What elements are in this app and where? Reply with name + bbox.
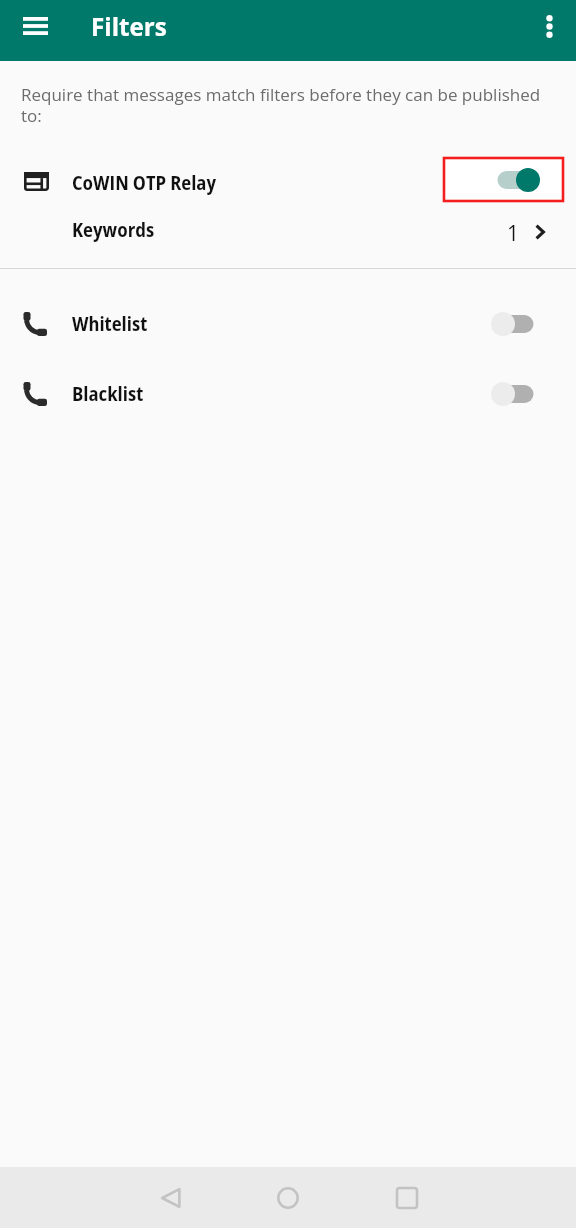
button[interactable]: Open navigation menu [5, 7, 66, 45]
staticText: Keywords [72, 217, 155, 243]
button[interactable]: Blacklist toggle [491, 382, 540, 406]
staticText: Blacklist [72, 381, 144, 407]
staticText: Filters [91, 10, 167, 43]
button[interactable]: Back [141, 1168, 201, 1228]
button[interactable]: Recent apps [377, 1168, 437, 1228]
staticText: CoWIN OTP Relay [72, 170, 217, 196]
staticText: 1 [507, 219, 520, 248]
button[interactable]: Home [258, 1168, 318, 1228]
button[interactable]: Whitelist toggle [491, 312, 540, 336]
button[interactable]: Blacklist [0, 372, 576, 416]
button[interactable]: Whitelist [0, 302, 576, 346]
button[interactable]: Keywords [0, 208, 576, 252]
button[interactable]: More options [518, 6, 576, 46]
staticText: Require that messages match filters befo… [21, 83, 553, 127]
staticText: Whitelist [72, 311, 148, 337]
button[interactable]: CoWIN OTP Relay toggle [444, 158, 563, 201]
button[interactable]: CoWIN OTP Relay [0, 157, 576, 201]
